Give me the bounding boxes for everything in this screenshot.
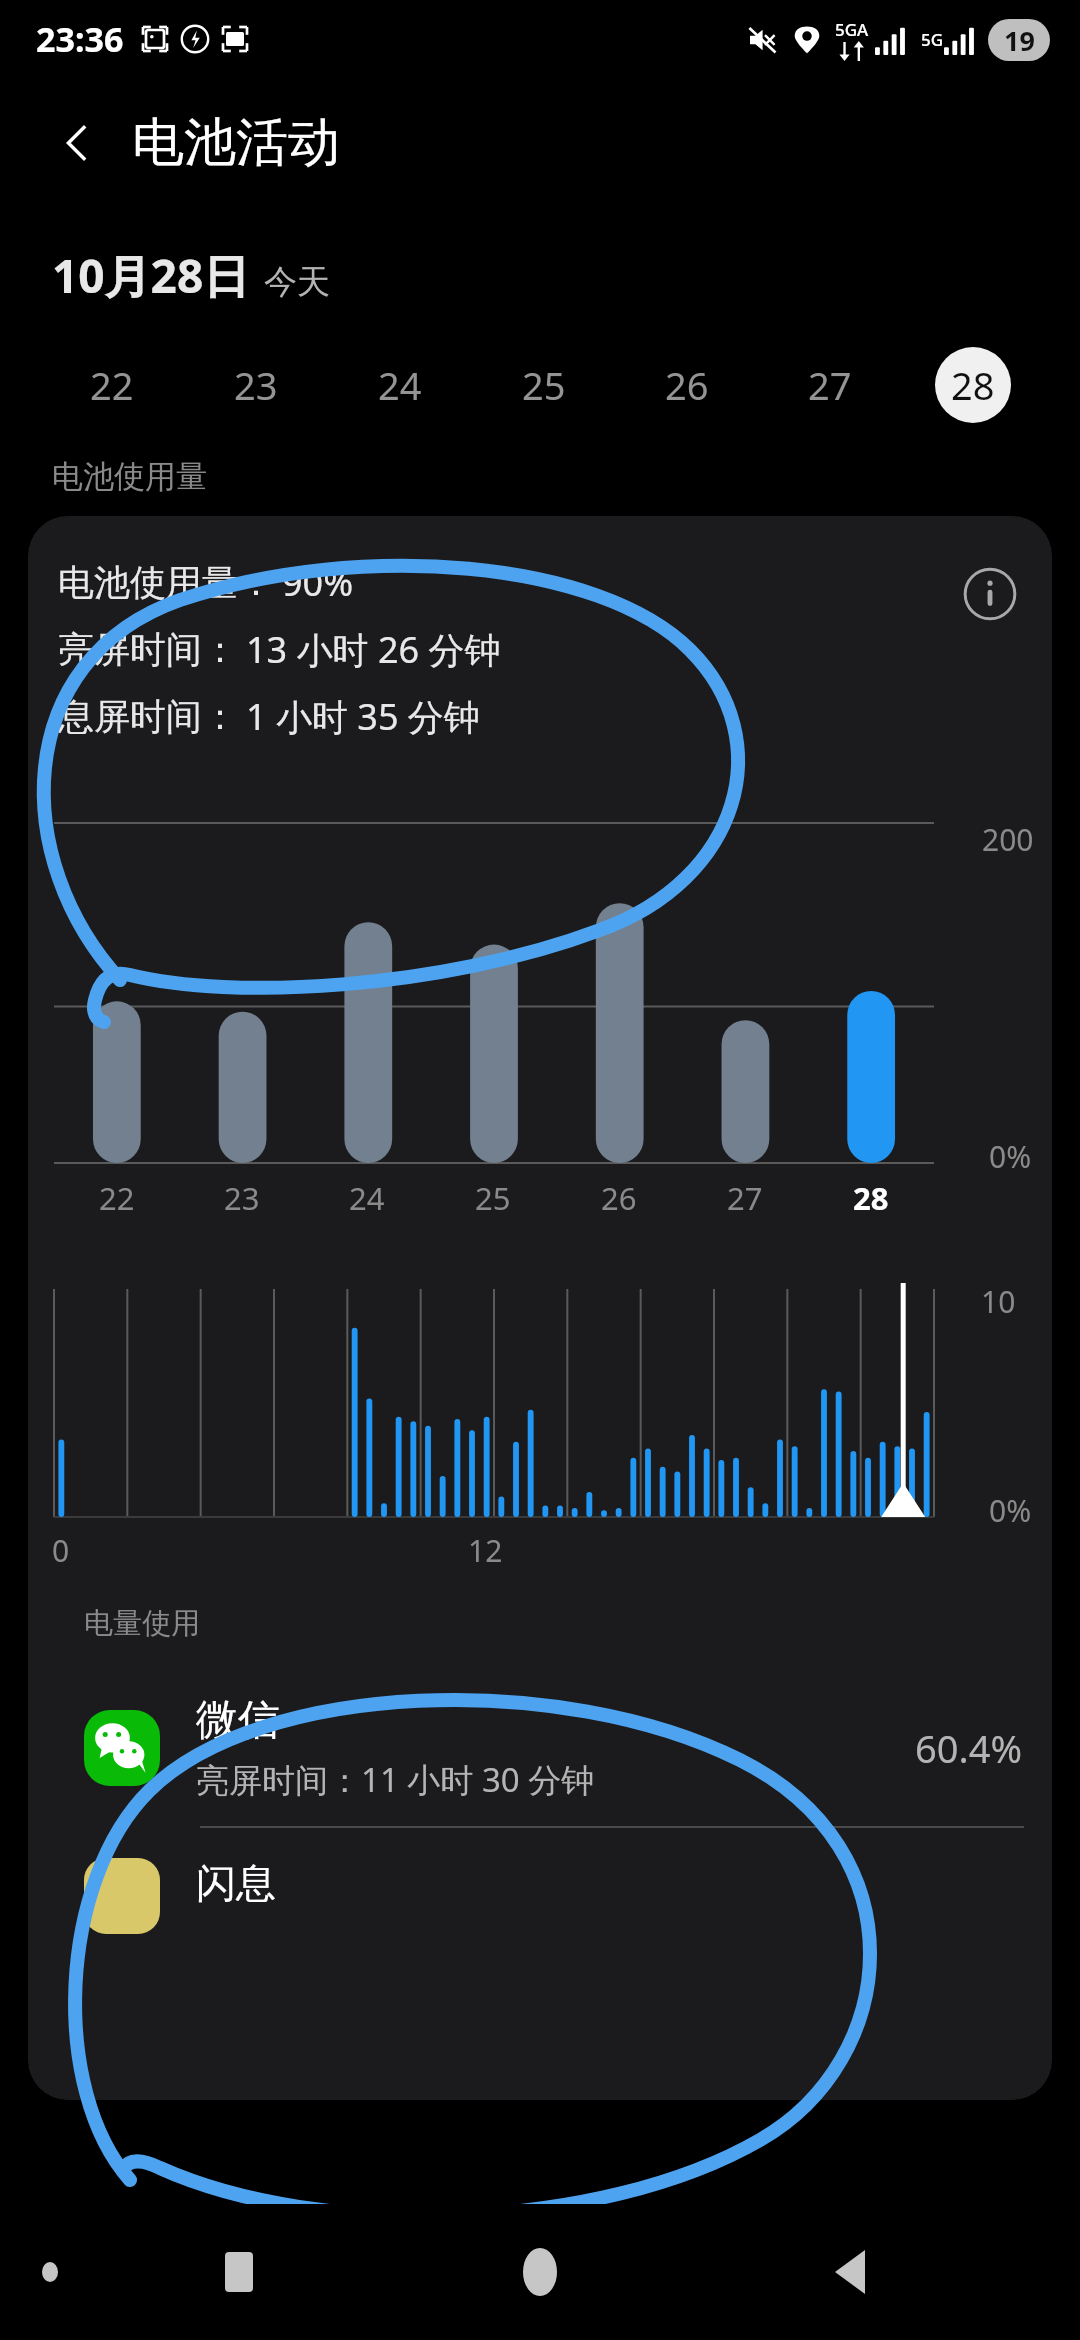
button[interactable]: Home bbox=[497, 2229, 583, 2315]
staticText: 1 小时 35 分钟 bbox=[246, 692, 480, 741]
button[interactable]: 闪息 bbox=[28, 1858, 1052, 1934]
staticText: 28 bbox=[951, 359, 995, 411]
staticText: 12 bbox=[468, 1530, 503, 1571]
button[interactable]: 27 bbox=[758, 337, 901, 433]
staticText: 10 bbox=[981, 1281, 1016, 1322]
staticText: 息屏时间： bbox=[58, 694, 238, 739]
staticText: 5GA bbox=[835, 18, 869, 41]
staticText: 23 bbox=[224, 1177, 260, 1219]
staticText: 电池使用量： bbox=[58, 560, 274, 605]
staticText: 亮屏时间：11 小时 30 分钟 bbox=[196, 1757, 595, 1802]
staticText: 22 bbox=[99, 1177, 135, 1219]
staticText: 27 bbox=[808, 359, 852, 411]
staticText: 28 bbox=[853, 1177, 889, 1219]
staticText: 23:36 bbox=[36, 16, 124, 62]
button[interactable]: 26 bbox=[615, 337, 758, 433]
staticText: 26 bbox=[665, 359, 709, 411]
staticText: 闪息 bbox=[196, 1858, 276, 1908]
staticText: 200 bbox=[982, 819, 1034, 860]
staticText: 电池活动 bbox=[132, 110, 340, 176]
staticText: 25 bbox=[522, 359, 566, 411]
staticText: 电量使用 bbox=[84, 1605, 200, 1642]
staticText: 5G bbox=[921, 28, 944, 51]
staticText: 26 bbox=[601, 1177, 637, 1219]
button[interactable]: 25 bbox=[472, 337, 615, 433]
staticText: 0% bbox=[989, 1136, 1032, 1177]
staticText: 13 小时 26 分钟 bbox=[246, 625, 501, 674]
staticText: 亮屏时间： bbox=[58, 627, 238, 672]
staticText: 0 bbox=[52, 1530, 70, 1571]
button[interactable]: 24 bbox=[328, 337, 472, 433]
staticText: 90% bbox=[282, 558, 354, 607]
button[interactable]: 23 bbox=[184, 337, 328, 433]
button[interactable]: Recent apps bbox=[200, 2233, 278, 2311]
staticText: 24 bbox=[378, 359, 422, 411]
staticText: 电池使用量 bbox=[52, 457, 207, 496]
button[interactable]: Back bbox=[810, 2232, 890, 2312]
button[interactable]: More bbox=[38, 2258, 66, 2286]
staticText: 微信 bbox=[196, 1694, 280, 1747]
staticText: 27 bbox=[727, 1177, 763, 1219]
staticText: 今天 bbox=[264, 261, 330, 303]
staticText: 22 bbox=[90, 359, 134, 411]
button[interactable]: 微信 bbox=[28, 1694, 1052, 1802]
button[interactable]: 22 bbox=[40, 337, 184, 433]
staticText: 24 bbox=[349, 1177, 385, 1219]
button[interactable]: Information bbox=[954, 558, 1026, 630]
staticText: 0% bbox=[989, 1490, 1032, 1531]
button[interactable]: 28 bbox=[901, 337, 1044, 433]
staticText: 60.4% bbox=[915, 1722, 1022, 1774]
staticText: 23 bbox=[234, 359, 278, 411]
staticText: 10月28日 bbox=[52, 244, 250, 307]
staticText: 25 bbox=[475, 1177, 511, 1219]
button[interactable]: Back bbox=[42, 107, 114, 179]
staticText: 19 bbox=[1004, 22, 1035, 59]
